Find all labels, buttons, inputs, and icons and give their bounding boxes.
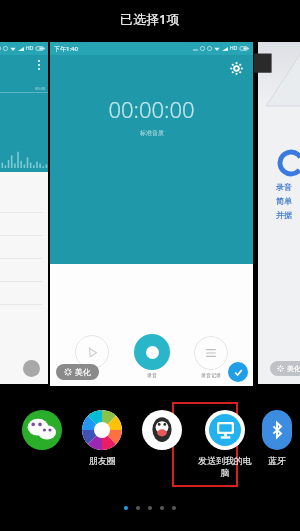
staticText: 已选择1项: [120, 10, 180, 28]
staticText: 发送到我的电 脑: [198, 455, 252, 479]
button[interactable]: 美化: [64, 367, 91, 377]
button[interactable]: 设置: [229, 61, 243, 75]
staticText: 录音记录: [201, 372, 221, 378]
staticText: 录音: [147, 372, 157, 378]
button[interactable]: 录音: [258, 42, 300, 384]
staticText: HD: [230, 45, 238, 52]
staticText: 下午1:40: [54, 45, 78, 53]
staticText: 美化: [287, 364, 300, 373]
staticText: 录音: [276, 182, 292, 192]
button[interactable]: [134, 334, 170, 370]
staticText: HD: [26, 45, 34, 52]
button[interactable]: 已选择: [228, 362, 248, 382]
button[interactable]: 分享: [16, 406, 68, 450]
staticText: 美化: [75, 367, 91, 377]
staticText: 00:08: [35, 86, 46, 91]
staticText: 蓝牙: [268, 455, 286, 466]
staticText: 简单: [276, 196, 292, 206]
button[interactable]: 发送到我的电 脑: [196, 406, 254, 479]
button[interactable]: 蓝牙: [262, 406, 292, 466]
staticText: 并据: [276, 210, 292, 220]
button[interactable]: 朋友圈: [76, 406, 128, 466]
button[interactable]: 播放: [75, 335, 109, 369]
button[interactable]: 下午1:40: [50, 42, 253, 386]
staticText: 00:00:00: [108, 94, 195, 124]
staticText: 朋友圈: [89, 455, 116, 466]
staticText: 标准音质: [140, 129, 164, 137]
button[interactable]: 分享: [136, 406, 188, 450]
button[interactable]: HD: [0, 42, 48, 384]
button[interactable]: 录音记录: [194, 336, 228, 370]
